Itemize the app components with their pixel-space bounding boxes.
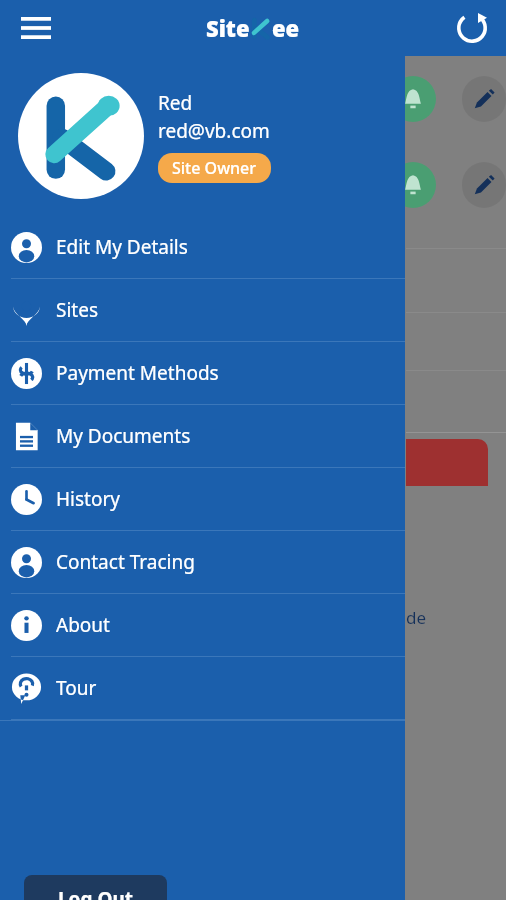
staticText: Site Owner (172, 157, 257, 179)
staticText: de (406, 606, 427, 629)
button[interactable]: Refresh (448, 4, 496, 52)
button[interactable]: Tour (0, 657, 405, 719)
staticText: Payment Methods (56, 360, 219, 386)
staticText: Site (206, 13, 250, 43)
button[interactable]: Log Out (24, 875, 167, 900)
button[interactable]: Site Owner (158, 153, 271, 183)
staticText: Edit My Details (56, 234, 188, 260)
staticText: ee (272, 13, 300, 43)
button[interactable]: History (0, 468, 405, 530)
button[interactable]: Sites (0, 279, 405, 341)
staticText: Tour (56, 675, 97, 701)
button[interactable]: Open navigation menu (12, 4, 60, 52)
staticText: About (56, 612, 110, 638)
staticText: red@vb.com (158, 118, 270, 144)
button[interactable]: Payment Methods (0, 342, 405, 404)
staticText: Sites (56, 297, 99, 323)
staticText: Log Out (58, 886, 134, 900)
button[interactable]: Contact Tracing (0, 531, 405, 593)
staticText: Contact Tracing (56, 549, 195, 575)
button[interactable]: My Documents (0, 405, 405, 467)
staticText: My Documents (56, 423, 191, 449)
staticText: History (56, 486, 120, 512)
button[interactable]: Edit My Details (0, 216, 405, 278)
staticText: Red (158, 90, 193, 116)
button[interactable]: About (0, 594, 405, 656)
